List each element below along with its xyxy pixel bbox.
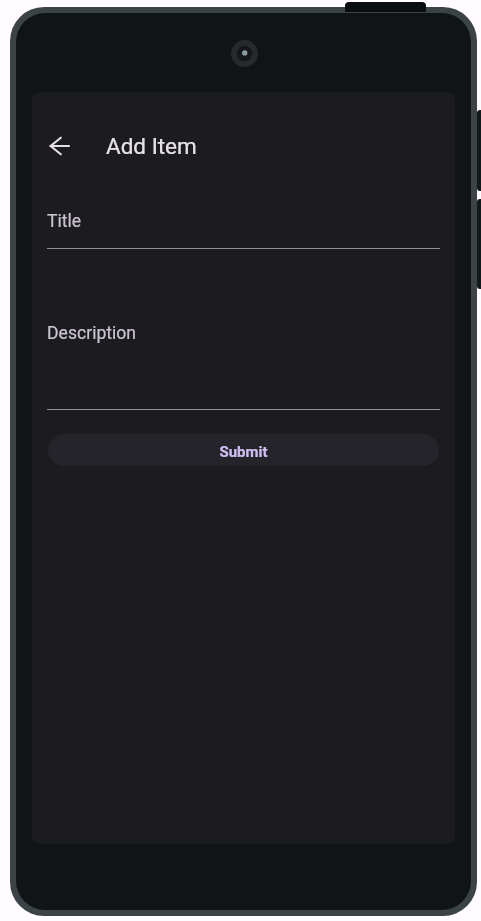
button[interactable]: Back [40,126,80,166]
button[interactable]: Description [47,323,440,410]
staticText: Submit [219,443,268,461]
staticText: Add Item [106,133,197,159]
staticText: Description [47,323,137,344]
button[interactable]: Title [47,211,440,249]
staticText: Title [47,211,82,232]
button[interactable]: Submit [48,434,439,466]
